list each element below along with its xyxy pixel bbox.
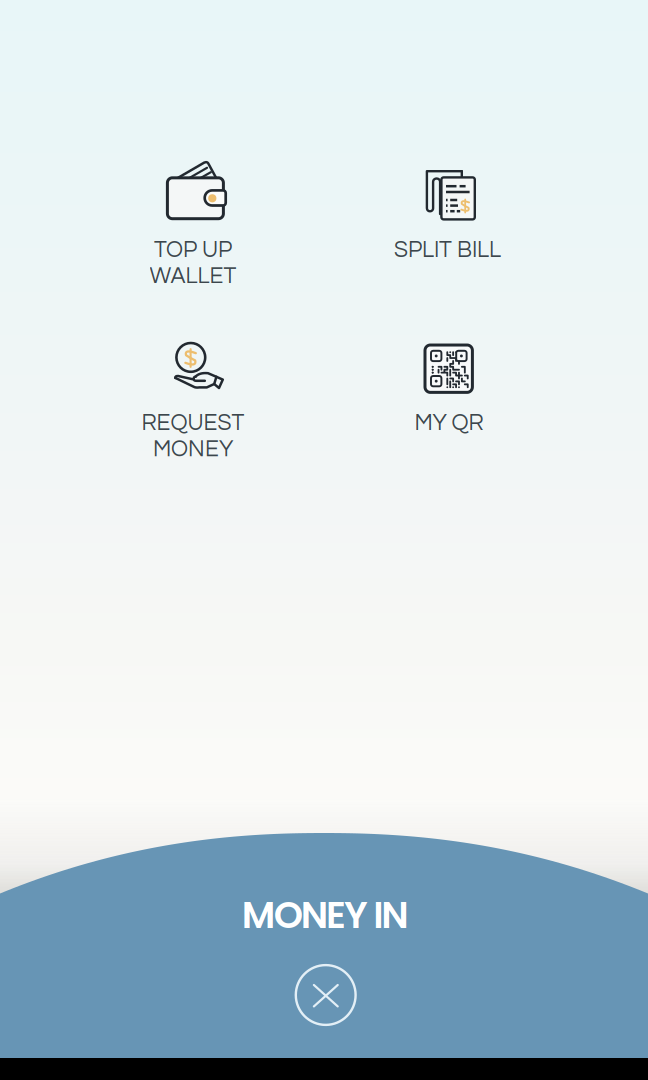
button[interactable]: TOP UP xyxy=(0,0,648,1080)
staticText: MONEY xyxy=(153,438,233,461)
staticText: MY QR xyxy=(414,411,483,435)
button[interactable]: MY QR xyxy=(0,0,648,1080)
staticText: SPLIT BILL xyxy=(394,238,501,262)
button[interactable]: REQUEST xyxy=(0,0,648,1080)
button[interactable]: Close xyxy=(295,964,357,1026)
button[interactable]: SPLIT BILL xyxy=(0,0,648,1080)
staticText: REQUEST xyxy=(141,411,244,435)
staticText: WALLET xyxy=(149,265,236,288)
staticText: MONEY IN xyxy=(242,889,408,941)
staticText: TOP UP xyxy=(154,238,232,262)
